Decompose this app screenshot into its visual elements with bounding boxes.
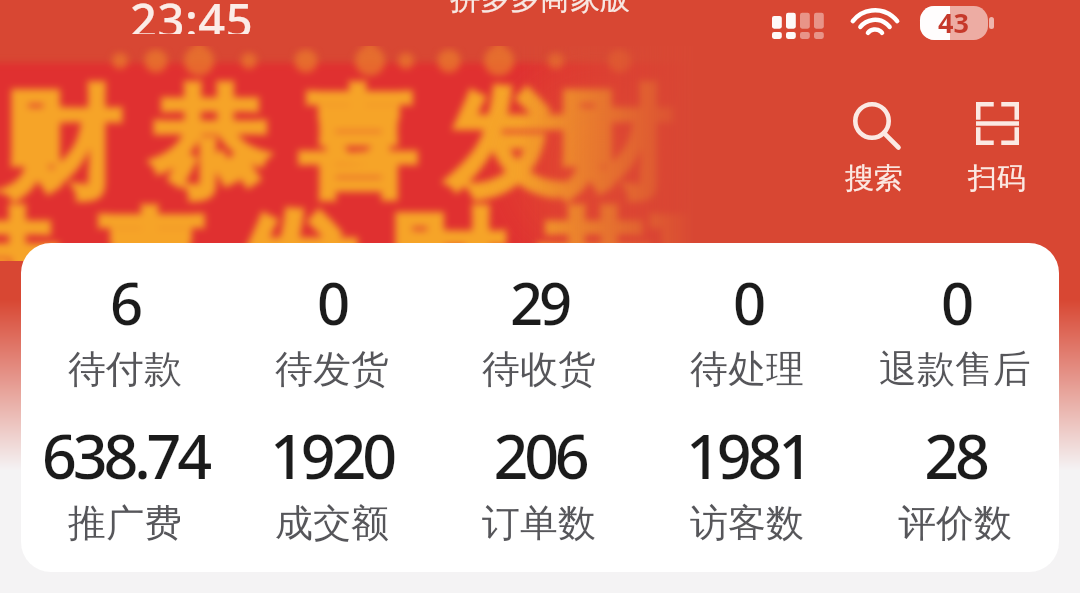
staticText: 0 xyxy=(941,263,970,342)
staticText: 发 xyxy=(0,71,2,220)
staticText: 成交额 xyxy=(275,499,389,547)
staticText: 29 xyxy=(510,263,568,342)
staticText: 发 xyxy=(238,194,386,261)
staticText: 订单数 xyxy=(482,499,596,547)
staticText: 访客数 xyxy=(690,499,804,547)
staticText: 待收货 xyxy=(482,345,596,393)
staticText: 喜 xyxy=(90,194,238,261)
staticText: 搜索 xyxy=(845,160,903,197)
button[interactable]: 0 xyxy=(228,263,435,393)
staticText: 恭 xyxy=(150,71,298,220)
button[interactable]: 1981 xyxy=(643,414,851,547)
staticText: 恭 xyxy=(0,194,90,261)
staticText: 拼多多商家版 xyxy=(450,0,630,18)
staticText: 1920 xyxy=(270,414,393,497)
staticText: 财 xyxy=(386,194,534,261)
button[interactable]: 搜索 xyxy=(828,94,920,201)
staticText: 喜 xyxy=(298,71,446,220)
staticText: 6 xyxy=(110,263,139,342)
staticText: 1981 xyxy=(686,414,809,497)
staticText: 28 xyxy=(924,414,986,497)
button[interactable]: 638.74 xyxy=(21,414,228,547)
button[interactable]: 206 xyxy=(435,414,643,547)
staticText: 0 xyxy=(733,263,762,342)
button[interactable]: 29 xyxy=(435,263,643,393)
staticText: 推广费 xyxy=(68,499,182,547)
staticText: 43 xyxy=(938,4,969,41)
staticText: 638.74 xyxy=(42,414,208,497)
button[interactable]: 0 xyxy=(851,263,1059,393)
button[interactable]: 0 xyxy=(643,263,851,393)
button[interactable]: 6 xyxy=(21,263,228,393)
staticText: 待发货 xyxy=(275,345,389,393)
button[interactable]: 28 xyxy=(851,414,1059,547)
button[interactable]: 扫码 xyxy=(951,94,1043,201)
staticText: 发 xyxy=(446,71,554,220)
button[interactable]: 1920 xyxy=(228,414,435,547)
staticText: 待处理 xyxy=(690,345,804,393)
staticText: 恭 xyxy=(534,194,642,261)
staticText: 评价数 xyxy=(898,499,1012,547)
staticText: 23:45 xyxy=(130,0,254,34)
staticText: 0 xyxy=(317,263,346,342)
staticText: 退款售后 xyxy=(879,345,1031,393)
staticText: 待付款 xyxy=(68,345,182,393)
staticText: 206 xyxy=(493,414,586,497)
staticText: 财 xyxy=(2,71,150,220)
staticText: 扫码 xyxy=(968,160,1026,197)
